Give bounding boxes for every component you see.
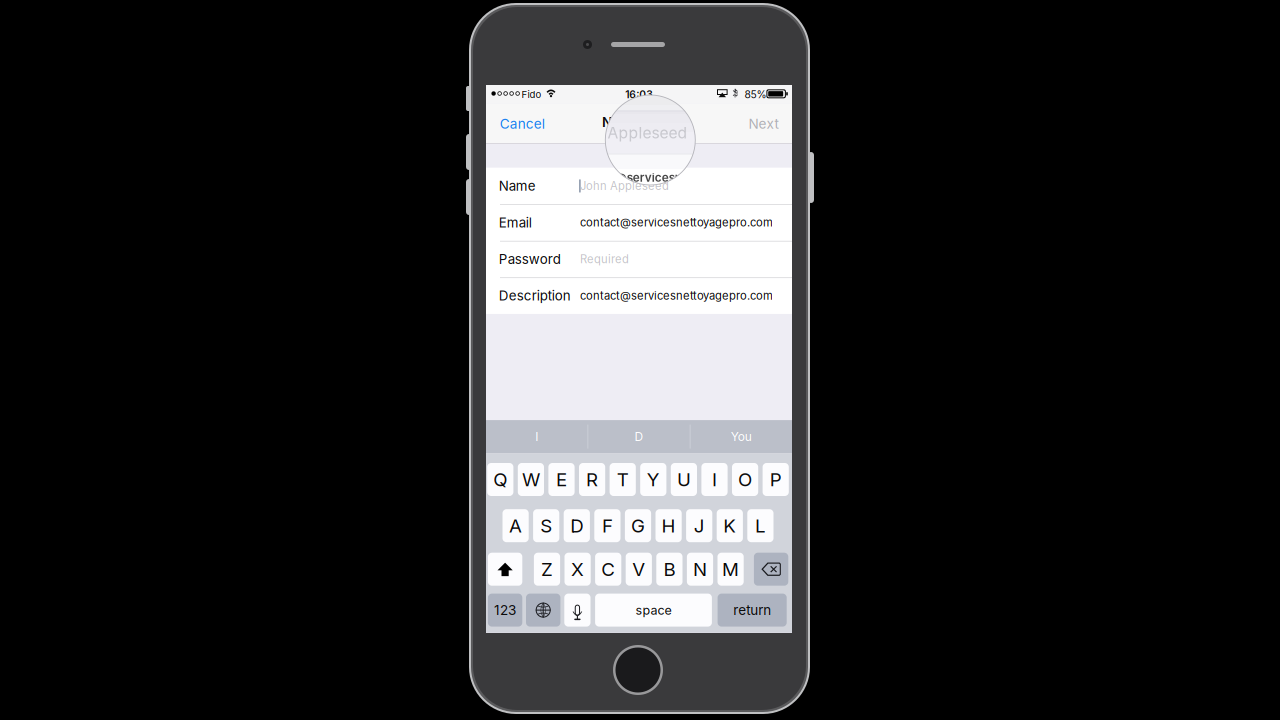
button[interactable]: K bbox=[717, 509, 743, 542]
staticText: G bbox=[631, 514, 645, 537]
button[interactable]: W bbox=[518, 463, 544, 496]
button[interactable]: M bbox=[717, 553, 744, 586]
button[interactable]: Cancel bbox=[486, 107, 550, 140]
staticText: contact@servicesnettoyagepro.com bbox=[580, 289, 773, 303]
staticText: S bbox=[540, 514, 552, 537]
button[interactable]: D bbox=[564, 509, 590, 542]
staticText: I bbox=[712, 468, 717, 491]
button[interactable]: A bbox=[502, 509, 529, 542]
staticText: Fido bbox=[521, 89, 541, 100]
staticText: contact@servicesnettoyagepro.com bbox=[580, 216, 773, 229]
staticText: space bbox=[635, 602, 671, 618]
staticText: W bbox=[522, 468, 540, 491]
button[interactable]: 123 bbox=[488, 594, 522, 627]
staticText: 85% bbox=[745, 88, 767, 101]
staticText: 123 bbox=[494, 602, 516, 618]
button[interactable]: B bbox=[656, 553, 682, 586]
staticText: R bbox=[586, 468, 598, 491]
staticText: Appleseed bbox=[608, 123, 688, 142]
staticText: New Account bbox=[602, 114, 689, 130]
staticText: A bbox=[509, 514, 522, 537]
staticText: Cancel bbox=[500, 116, 545, 132]
staticText: Password bbox=[499, 251, 561, 267]
staticText: Required bbox=[580, 252, 629, 266]
staticText: return bbox=[733, 602, 771, 618]
button[interactable]: S bbox=[533, 509, 559, 542]
button[interactable]: Description bbox=[486, 277, 792, 314]
button[interactable]: V bbox=[626, 553, 652, 586]
staticText: L bbox=[755, 514, 766, 537]
staticText: P bbox=[770, 468, 782, 491]
staticText: Next bbox=[748, 116, 778, 132]
staticText: X bbox=[571, 558, 584, 580]
button[interactable]: Password bbox=[486, 241, 792, 277]
button[interactable]: Next bbox=[732, 107, 792, 140]
staticText: D bbox=[634, 429, 643, 444]
staticText: Y bbox=[647, 468, 660, 491]
button[interactable]: O bbox=[732, 463, 758, 496]
staticText: Q bbox=[493, 468, 507, 491]
button[interactable]: return bbox=[718, 594, 787, 627]
button[interactable]: Z bbox=[534, 553, 560, 586]
button[interactable]: Shift bbox=[488, 553, 522, 586]
button[interactable]: H bbox=[655, 509, 682, 542]
button[interactable]: P bbox=[763, 463, 789, 496]
button[interactable]: F bbox=[594, 509, 620, 542]
button[interactable]: space bbox=[595, 594, 712, 627]
button[interactable]: E bbox=[548, 463, 575, 496]
button[interactable]: G bbox=[625, 509, 651, 542]
staticText: H bbox=[662, 514, 676, 537]
staticText: T bbox=[617, 468, 629, 491]
staticText: Z bbox=[541, 558, 553, 580]
button[interactable]: C bbox=[595, 553, 621, 586]
button[interactable]: R bbox=[579, 463, 605, 496]
staticText: N bbox=[693, 558, 707, 580]
staticText: 16:03 bbox=[625, 88, 653, 101]
staticText: B bbox=[663, 558, 675, 580]
button[interactable]: T bbox=[610, 463, 636, 496]
button[interactable]: I bbox=[486, 420, 588, 453]
staticText: Description bbox=[499, 288, 571, 304]
staticText: O bbox=[738, 468, 752, 491]
staticText: V bbox=[632, 558, 645, 580]
staticText: C bbox=[601, 558, 615, 580]
staticText: I bbox=[535, 429, 538, 444]
staticText: You bbox=[731, 429, 752, 444]
button[interactable]: X bbox=[564, 553, 591, 586]
staticText: Email bbox=[499, 214, 532, 231]
button[interactable]: D bbox=[588, 420, 690, 453]
staticText: M bbox=[722, 558, 739, 580]
staticText: D bbox=[570, 514, 583, 537]
staticText: John Appleseed bbox=[580, 179, 669, 193]
button[interactable]: Email bbox=[486, 204, 792, 241]
staticText: E bbox=[556, 468, 567, 491]
button[interactable]: I bbox=[701, 463, 728, 496]
button[interactable]: U bbox=[671, 463, 697, 496]
button[interactable]: Y bbox=[640, 463, 666, 496]
button[interactable]: N bbox=[687, 553, 713, 586]
button[interactable]: Next keyboard bbox=[526, 594, 560, 627]
button[interactable]: Q bbox=[487, 463, 513, 496]
staticText: U bbox=[677, 468, 691, 491]
staticText: K bbox=[723, 514, 736, 537]
staticText: Name bbox=[499, 178, 536, 194]
staticText: @servicesn bbox=[615, 170, 682, 185]
button[interactable]: L bbox=[747, 509, 773, 542]
staticText: F bbox=[602, 514, 613, 537]
button[interactable]: You bbox=[690, 420, 792, 453]
button[interactable]: J bbox=[686, 509, 712, 542]
button[interactable]: Dictation bbox=[564, 594, 590, 627]
staticText: J bbox=[694, 514, 705, 537]
button[interactable]: Delete bbox=[754, 553, 788, 586]
button[interactable]: Name bbox=[486, 168, 792, 204]
